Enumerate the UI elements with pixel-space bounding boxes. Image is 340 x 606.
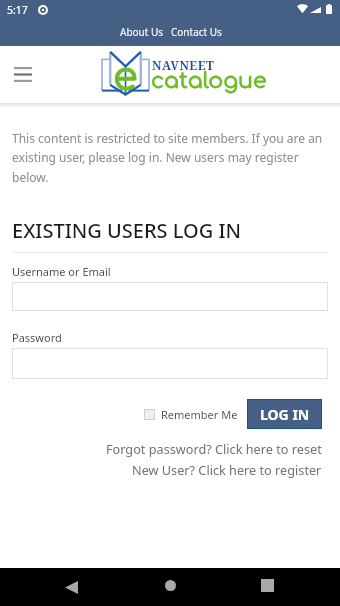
button[interactable]: Back <box>54 570 88 604</box>
staticText: catalogue <box>151 69 267 94</box>
staticText: LOG IN <box>260 405 310 424</box>
staticText: NAVNEET <box>152 57 215 73</box>
staticText: Username or Email <box>12 264 111 279</box>
staticText: 5:17 <box>7 3 28 17</box>
staticText: This content is restricted to site membe… <box>12 130 328 186</box>
staticText: About Us <box>120 25 164 39</box>
button[interactable]: Recent apps <box>250 568 284 602</box>
button[interactable] <box>12 348 328 379</box>
button[interactable]: Remember Me <box>144 407 238 422</box>
staticText: e <box>113 55 138 99</box>
button[interactable]: New User? Click here to register <box>12 461 322 478</box>
staticText: Remember Me <box>161 407 238 422</box>
staticText: Password <box>12 330 62 345</box>
button[interactable]: Open navigation menu <box>6 57 40 91</box>
button[interactable]: Forgot password? Click here to reset <box>12 440 322 457</box>
button[interactable]: Home <box>153 568 187 602</box>
staticText: EXISTING USERS LOG IN <box>12 217 242 244</box>
button[interactable]: LOG IN <box>247 399 322 429</box>
button[interactable]: About Us <box>118 21 166 43</box>
staticText: New User? Click here to register <box>132 461 322 478</box>
button[interactable]: Contact Us <box>169 21 224 43</box>
button[interactable] <box>12 282 328 311</box>
staticText: Forgot password? Click here to reset <box>106 440 322 457</box>
staticText: Contact Us <box>171 25 222 39</box>
